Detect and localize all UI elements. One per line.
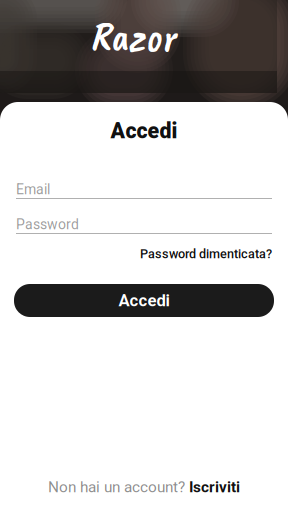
- staticText: Iscriviti: [189, 478, 240, 496]
- staticText: Accedi: [118, 291, 169, 310]
- staticText: Password: [16, 216, 79, 233]
- staticText: Non hai un account?: [48, 478, 185, 496]
- staticText: Razor: [90, 11, 176, 63]
- button[interactable]: Password dimenticata?: [140, 246, 272, 262]
- staticText: Accedi: [110, 118, 177, 143]
- staticText: Password dimenticata?: [140, 247, 272, 261]
- button[interactable]: Accedi: [14, 284, 274, 317]
- staticText: Email: [16, 181, 50, 198]
- button[interactable]: Non hai un account?: [48, 478, 240, 496]
